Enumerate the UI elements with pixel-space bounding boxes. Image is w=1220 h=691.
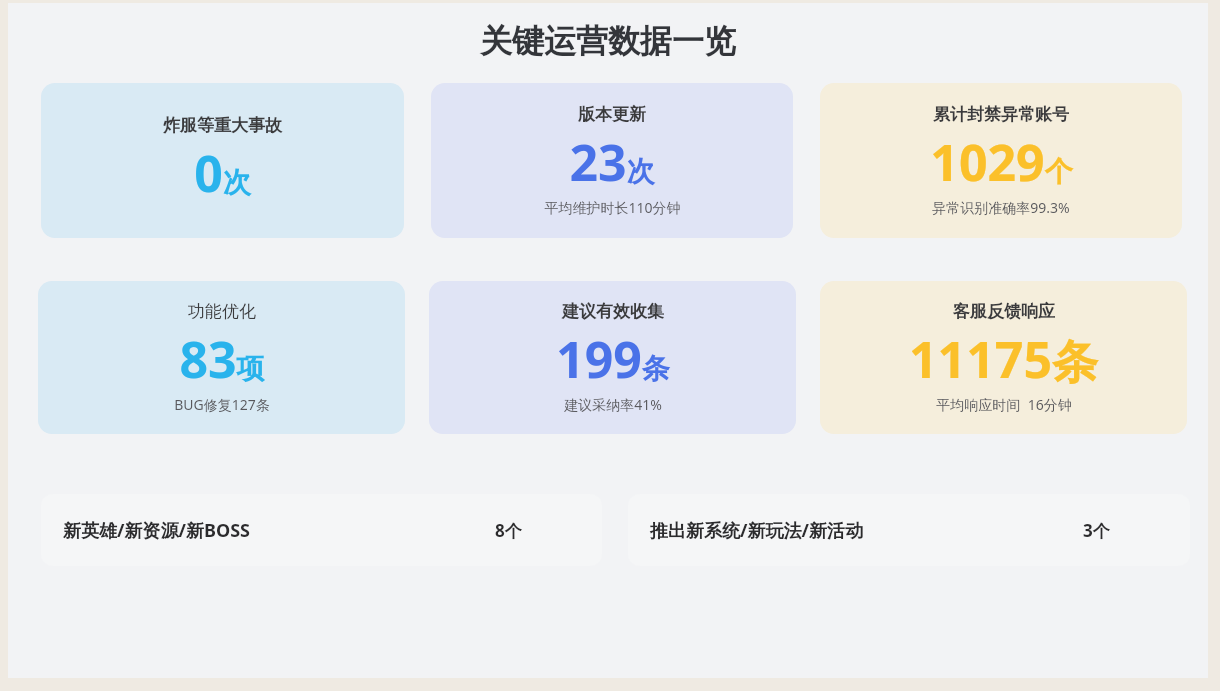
staticText: 8个 [495, 519, 522, 542]
staticText: 3个 [1083, 519, 1110, 542]
staticText: 新英雄/新资源/新BOSS [63, 518, 250, 543]
staticText: 0次 [194, 139, 251, 207]
staticText: 版本更新 [578, 104, 646, 125]
staticText: 11175条 [909, 325, 1098, 393]
staticText: 关键运营数据一览 [480, 21, 736, 61]
button[interactable]: 炸服等重大事故 [41, 83, 404, 238]
button[interactable]: 版本更新 [431, 83, 793, 238]
staticText: 23次 [569, 128, 655, 196]
staticText: 炸服等重大事故 [163, 115, 282, 136]
button[interactable]: 新英雄/新资源/新BOSS [41, 494, 602, 566]
staticText: 功能优化 [188, 301, 256, 322]
button[interactable]: 累计封禁异常账号 [820, 83, 1182, 238]
staticText: 建议采纳率41% [564, 395, 662, 414]
staticText: 累计封禁异常账号 [933, 104, 1069, 125]
button[interactable]: 推出新系统/新玩法/新活动 [628, 494, 1190, 566]
staticText: 建议有效收集 [562, 301, 664, 322]
button[interactable]: 建议有效收集 [429, 281, 796, 434]
staticText: 83项 [179, 325, 265, 393]
staticText: 推出新系统/新玩法/新活动 [650, 518, 863, 543]
staticText: 客服反馈响应 [953, 301, 1055, 322]
staticText: 平均维护时长110分钟 [544, 198, 681, 217]
staticText: 异常识别准确率99.3% [932, 198, 1070, 217]
staticText: 199条 [556, 325, 670, 393]
staticText: BUG修复127条 [174, 395, 270, 414]
button[interactable]: 功能优化 [38, 281, 405, 434]
button[interactable]: 客服反馈响应 [820, 281, 1187, 434]
staticText: 1029个 [930, 128, 1073, 196]
staticText: 平均响应时间 16分钟 [936, 395, 1072, 414]
